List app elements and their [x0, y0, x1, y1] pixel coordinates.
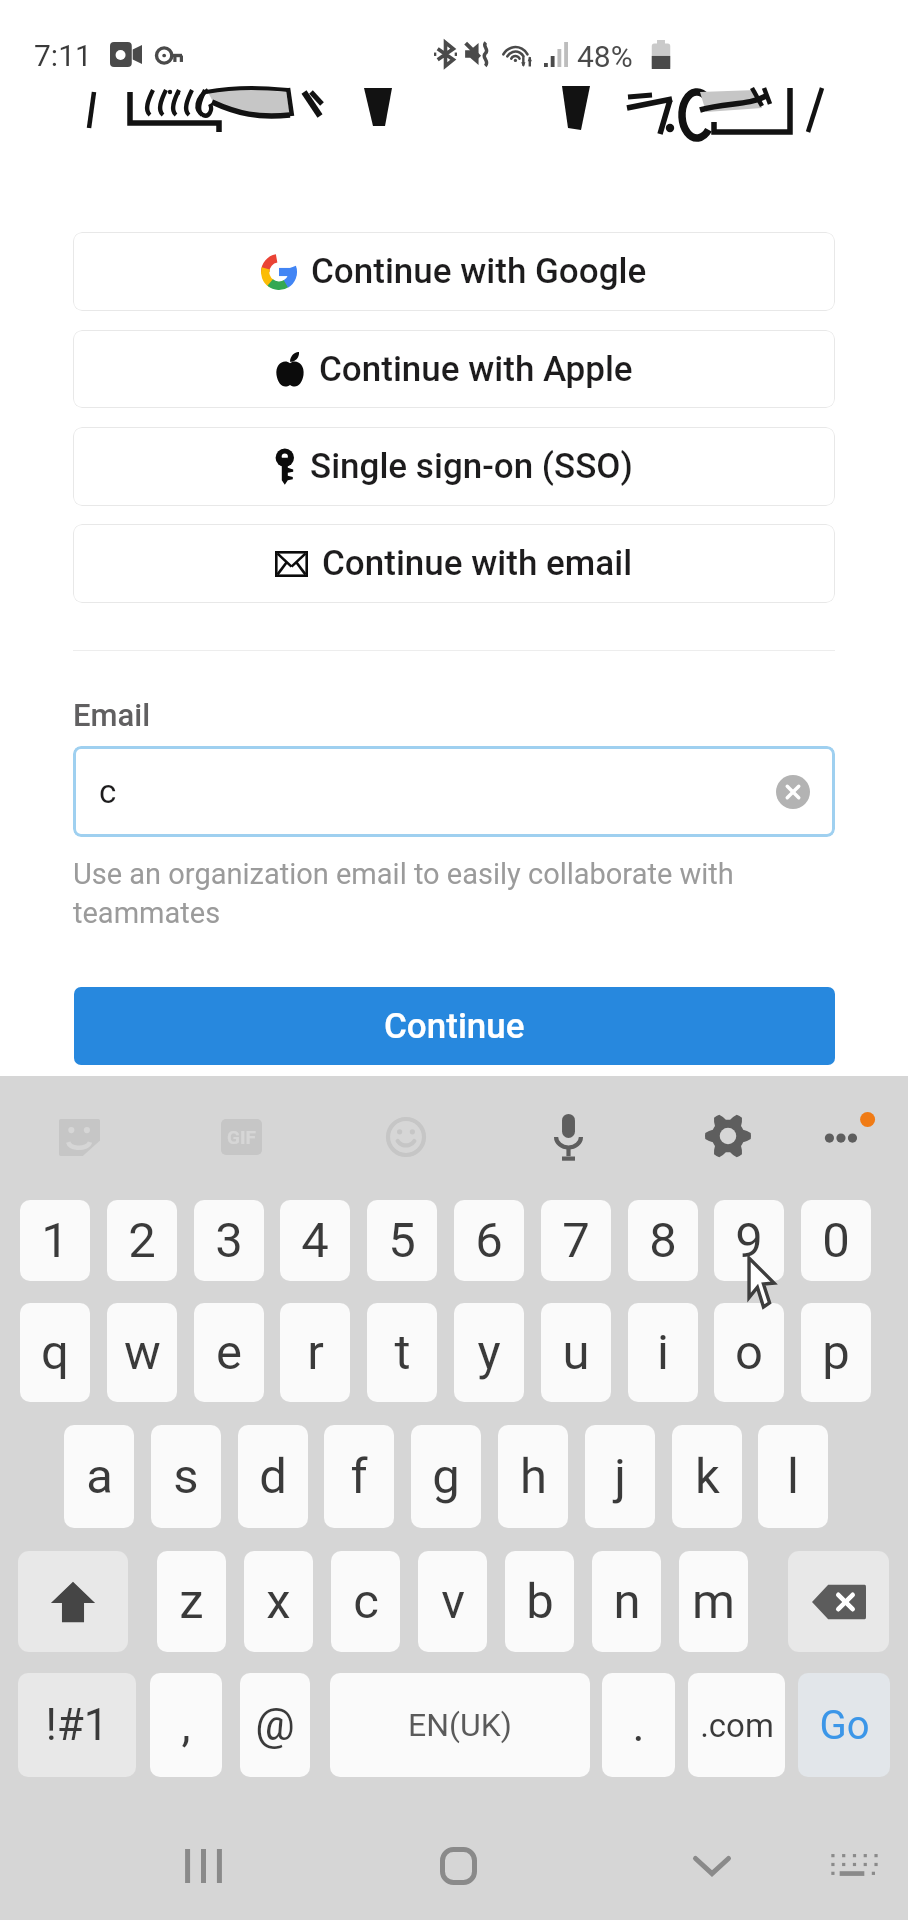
button[interactable]: o	[714, 1303, 784, 1402]
staticText: Single sign-on (SSO)	[310, 446, 633, 487]
button[interactable]: Continue with email	[73, 524, 835, 603]
button[interactable]: x	[244, 1551, 313, 1652]
button[interactable]: 0	[801, 1200, 871, 1281]
button[interactable]: z	[157, 1551, 226, 1652]
button[interactable]: Home	[418, 1826, 498, 1906]
button[interactable]: 9	[714, 1200, 784, 1281]
staticText: t	[394, 1324, 411, 1381]
button[interactable]: Hide keyboard	[672, 1826, 752, 1906]
button[interactable]: More options	[810, 1104, 882, 1166]
button[interactable]: Backspace	[788, 1551, 889, 1652]
button[interactable]: d	[238, 1425, 308, 1528]
staticText: u	[562, 1324, 590, 1381]
button[interactable]: .com	[688, 1673, 785, 1777]
button[interactable]: Switch keyboard	[812, 1828, 892, 1904]
button[interactable]: w	[107, 1303, 177, 1402]
staticText: 5	[388, 1212, 416, 1269]
staticText: 48%	[577, 39, 633, 74]
button[interactable]: b	[505, 1551, 574, 1652]
button[interactable]: 2	[107, 1200, 177, 1281]
button[interactable]: c	[331, 1551, 400, 1652]
staticText: o	[735, 1324, 763, 1381]
staticText: ,	[181, 1698, 191, 1752]
button[interactable]: Recent apps	[158, 1828, 248, 1904]
staticText: GIF	[227, 1126, 256, 1148]
button[interactable]: i	[628, 1303, 698, 1402]
staticText: Continue with Apple	[319, 349, 633, 390]
staticText: f	[350, 1448, 368, 1505]
button[interactable]: 7	[541, 1200, 611, 1281]
staticText: EN(UK)	[408, 1706, 512, 1744]
button[interactable]: g	[411, 1425, 481, 1528]
staticText: j	[614, 1448, 626, 1505]
button[interactable]: t	[367, 1303, 437, 1402]
button[interactable]: s	[151, 1425, 221, 1528]
staticText: 7	[562, 1212, 590, 1269]
button[interactable]: @	[240, 1673, 310, 1777]
staticText: .com	[700, 1706, 774, 1745]
button[interactable]: 1	[20, 1200, 90, 1281]
button[interactable]: Keyboard settings	[698, 1106, 758, 1166]
staticText: c	[353, 1573, 379, 1630]
button[interactable]: !#1	[18, 1673, 136, 1777]
button[interactable]: h	[498, 1425, 568, 1528]
staticText: y	[477, 1324, 501, 1381]
button[interactable]: EN(UK)	[330, 1673, 590, 1777]
button[interactable]: 8	[628, 1200, 698, 1281]
button[interactable]: f	[324, 1425, 394, 1528]
staticText: !#1	[45, 1699, 109, 1751]
button[interactable]: 4	[280, 1200, 350, 1281]
button[interactable]: v	[418, 1551, 487, 1652]
button[interactable]: 5	[367, 1200, 437, 1281]
staticText: s	[173, 1448, 199, 1505]
button[interactable]: Emoji	[376, 1108, 436, 1166]
staticText: .	[632, 1698, 645, 1752]
button[interactable]: r	[280, 1303, 350, 1402]
staticText: r	[307, 1324, 324, 1381]
button[interactable]: Continue	[74, 987, 835, 1065]
button[interactable]: l	[758, 1425, 828, 1528]
staticText: 4	[301, 1212, 329, 1269]
button[interactable]: m	[679, 1551, 748, 1652]
button[interactable]: k	[672, 1425, 742, 1528]
button[interactable]: e	[194, 1303, 264, 1402]
button[interactable]: .	[602, 1673, 675, 1777]
button[interactable]: ,	[150, 1673, 222, 1777]
button[interactable]: a	[64, 1425, 134, 1528]
button[interactable]: Clear text	[775, 774, 811, 810]
button[interactable]: 6	[454, 1200, 524, 1281]
button[interactable]: n	[592, 1551, 661, 1652]
staticText: x	[266, 1573, 291, 1630]
button[interactable]: q	[20, 1303, 90, 1402]
button[interactable]: Voice input	[538, 1104, 598, 1170]
button[interactable]: Stickers	[49, 1108, 109, 1166]
button[interactable]: y	[454, 1303, 524, 1402]
staticText: @	[255, 1699, 295, 1751]
button[interactable]: p	[801, 1303, 871, 1402]
button[interactable]: Continue with Apple	[73, 330, 835, 408]
button[interactable]: Continue with Google	[73, 232, 835, 311]
button[interactable]: Go	[798, 1673, 890, 1777]
button[interactable]: j	[585, 1425, 655, 1528]
button[interactable]: 3	[194, 1200, 264, 1281]
staticText: Use an organization email to easily coll…	[73, 857, 734, 891]
staticText: Continue with email	[322, 543, 633, 584]
staticText: teammates	[73, 896, 221, 930]
staticText: w	[124, 1324, 161, 1381]
staticText: 2	[128, 1212, 156, 1269]
staticText: g	[432, 1448, 460, 1505]
staticText: Go	[819, 1702, 870, 1749]
staticText: Continue with Google	[311, 251, 647, 292]
staticText: z	[179, 1573, 204, 1630]
staticText: v	[441, 1573, 465, 1630]
staticText: m	[692, 1573, 735, 1630]
button[interactable]: Single sign-on (SSO)	[73, 427, 835, 506]
button[interactable]: c	[73, 746, 835, 837]
button[interactable]: GIF	[211, 1108, 271, 1166]
button[interactable]: u	[541, 1303, 611, 1402]
staticText: Email	[73, 697, 151, 733]
button[interactable]: Shift	[18, 1551, 128, 1652]
staticText: b	[526, 1573, 554, 1630]
staticText: h	[520, 1448, 547, 1505]
staticText: 7:11	[34, 38, 92, 73]
